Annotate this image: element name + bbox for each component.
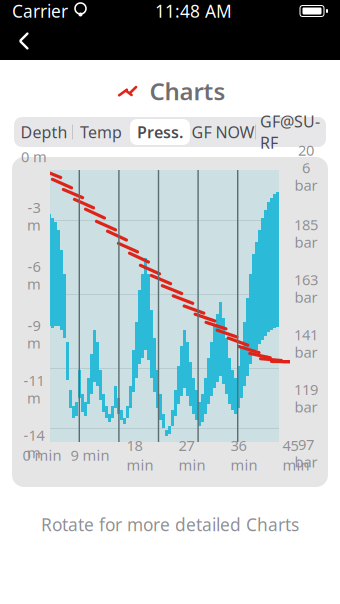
staticText: bar <box>294 175 317 195</box>
staticText: 45 min <box>282 435 309 474</box>
staticText: Press. <box>137 121 183 143</box>
button[interactable]: GF@SURF <box>256 119 324 145</box>
staticText: 6 <box>302 158 310 177</box>
staticText: bar <box>294 342 317 362</box>
button[interactable]: Depth <box>16 119 72 145</box>
staticText: -14 <box>23 425 44 445</box>
staticText: -6 <box>27 257 40 276</box>
button[interactable]: Press. <box>130 119 190 145</box>
staticText: 36 min <box>230 435 257 474</box>
staticText: Temp <box>80 121 122 143</box>
staticText: -3 <box>27 198 40 217</box>
staticText: 185 <box>294 215 318 234</box>
staticText: -11 <box>23 370 44 390</box>
staticText: 0 min <box>22 445 61 465</box>
staticText: 11:48 AM <box>155 0 232 22</box>
staticText: 163 <box>294 270 318 289</box>
staticText: 119 <box>294 380 318 399</box>
staticText: 27 min <box>178 435 205 474</box>
staticText: m <box>27 274 41 293</box>
staticText: 97 <box>298 435 314 454</box>
button[interactable]: GF NOW <box>191 119 255 145</box>
staticText: bar <box>294 232 317 252</box>
staticText: 0 m <box>21 147 47 166</box>
staticText: Carrier <box>12 0 68 22</box>
staticText: m <box>27 388 41 407</box>
staticText: bar <box>294 397 317 417</box>
staticText: Depth <box>20 121 67 143</box>
staticText: Charts <box>149 75 225 107</box>
staticText: 9 min <box>70 445 109 465</box>
staticText: GF NOW <box>191 121 254 143</box>
staticText: m <box>27 333 41 352</box>
staticText: -9 <box>27 315 40 335</box>
button[interactable]: Back <box>4 22 44 60</box>
button[interactable]: Temp <box>73 119 129 145</box>
staticText: m <box>27 443 41 462</box>
staticText: 141 <box>294 325 318 344</box>
staticText: 20 <box>298 140 314 160</box>
staticText: m <box>27 215 41 235</box>
staticText: bar <box>294 452 317 472</box>
staticText: Rotate for more detailed Charts <box>41 513 299 536</box>
staticText: GF@SURF <box>260 111 320 153</box>
staticText: bar <box>294 287 317 307</box>
staticText: 18 min <box>126 435 153 474</box>
